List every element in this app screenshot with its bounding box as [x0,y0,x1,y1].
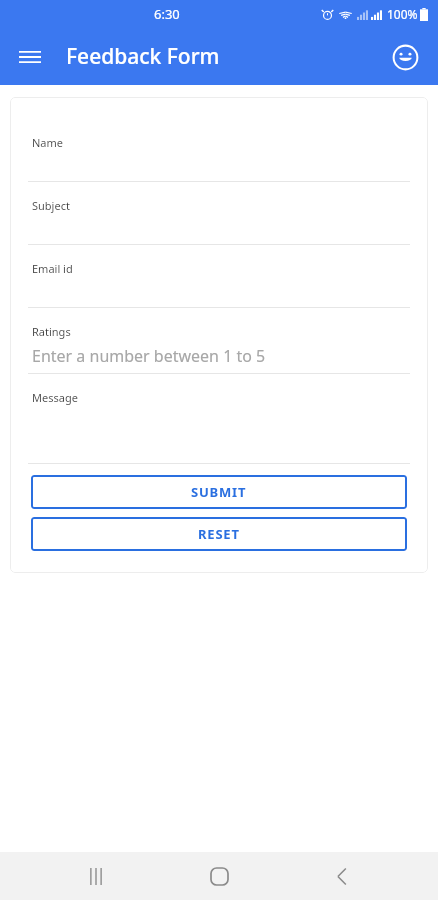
staticText: Feedback Form [66,42,220,71]
button[interactable]: Home [192,852,246,900]
staticText: Enter a number between 1 to 5 [32,345,266,367]
button[interactable]: SUBMIT [31,475,407,509]
button[interactable]: Recent apps [69,852,123,900]
staticText: 6:30 [154,5,180,23]
button[interactable]: Name [10,135,428,181]
button[interactable]: Subject [10,198,428,244]
staticText: Name [32,135,64,150]
staticText: SUBMIT [191,483,247,501]
button[interactable]: Ratings [10,324,428,373]
button[interactable]: Email id [10,261,428,307]
staticText: Email id [32,261,73,276]
staticText: Message [32,390,78,405]
staticText: Ratings [32,324,71,339]
staticText: RESET [198,525,240,543]
button[interactable]: Message [10,390,428,463]
staticText: Subject [32,198,70,213]
button[interactable]: Back [315,852,369,900]
button[interactable]: Feedback mood [384,36,426,78]
button[interactable]: RESET [31,517,407,551]
button[interactable]: Open navigation menu [8,35,52,79]
staticText: 100% [387,6,418,22]
